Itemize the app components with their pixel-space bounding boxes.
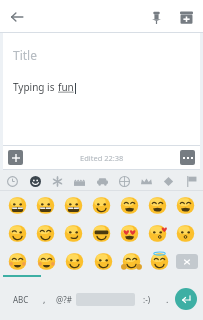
button[interactable]: Emoji 9 bbox=[61, 221, 86, 246]
button[interactable]: Emoji 15 bbox=[34, 249, 59, 274]
button[interactable]: Emoji category 4 bbox=[69, 171, 89, 191]
button[interactable]: Add reminder bbox=[173, 4, 199, 30]
button[interactable]: Emoji category 2 bbox=[25, 171, 45, 191]
button[interactable]: Emoji 14 bbox=[5, 249, 30, 274]
button[interactable]: Emoji category 5 bbox=[92, 171, 112, 191]
button[interactable]: Emoji 10 bbox=[89, 221, 114, 246]
button[interactable]: Emoji 12 bbox=[145, 221, 170, 246]
button[interactable]: Emoji category 7 bbox=[136, 171, 156, 191]
button[interactable]: Add bbox=[8, 150, 23, 165]
button[interactable]: :-) bbox=[135, 289, 159, 309]
staticText: :-) bbox=[143, 294, 151, 305]
staticText: . bbox=[166, 293, 169, 305]
button[interactable]: Emoji category 6 bbox=[114, 171, 134, 191]
button[interactable]: Emoji 7 bbox=[5, 221, 30, 246]
button[interactable]: Back bbox=[4, 4, 30, 30]
button[interactable]: Emoji 1 bbox=[33, 193, 58, 218]
button[interactable]: Backspace bbox=[176, 254, 198, 269]
button[interactable]: More options bbox=[180, 150, 195, 165]
button[interactable]: , bbox=[36, 289, 52, 309]
staticText: fun bbox=[58, 80, 74, 94]
button[interactable]: Emoji category 1 bbox=[2, 171, 22, 191]
button[interactable]: Emoji 17 bbox=[91, 249, 116, 274]
button[interactable]: Emoji 19 bbox=[147, 249, 172, 274]
button[interactable]: Emoji 13 bbox=[173, 221, 198, 246]
button[interactable]: ABC bbox=[6, 289, 36, 309]
staticText: Typing is bbox=[13, 80, 58, 94]
button[interactable]: @?# bbox=[52, 289, 76, 309]
button[interactable]: Enter bbox=[175, 288, 197, 310]
button[interactable]: Emoji 8 bbox=[33, 221, 58, 246]
staticText: Title bbox=[13, 47, 37, 63]
staticText: Edited 22:38 bbox=[80, 153, 124, 163]
button[interactable]: Emoji category 9 bbox=[181, 171, 201, 191]
button[interactable]: Emoji 16 bbox=[62, 249, 87, 274]
button[interactable]: Emoji 4 bbox=[117, 193, 142, 218]
button[interactable]: . bbox=[159, 289, 175, 309]
button[interactable]: Emoji 5 bbox=[145, 193, 170, 218]
button[interactable]: Emoji 0 bbox=[5, 193, 30, 218]
button[interactable]: Emoji 3 bbox=[89, 193, 114, 218]
button[interactable]: Emoji 6 bbox=[173, 193, 198, 218]
button[interactable]: Emoji 18 bbox=[119, 249, 144, 274]
button[interactable]: Emoji category 3 bbox=[47, 171, 67, 191]
button[interactable]: Pin note bbox=[143, 4, 169, 30]
button[interactable]: Emoji 11 bbox=[117, 221, 142, 246]
staticText: , bbox=[43, 293, 46, 305]
staticText: @?# bbox=[56, 294, 72, 305]
staticText: ABC bbox=[13, 294, 29, 305]
button[interactable]: Emoji 2 bbox=[61, 193, 86, 218]
button[interactable]: Emoji category 8 bbox=[158, 171, 178, 191]
